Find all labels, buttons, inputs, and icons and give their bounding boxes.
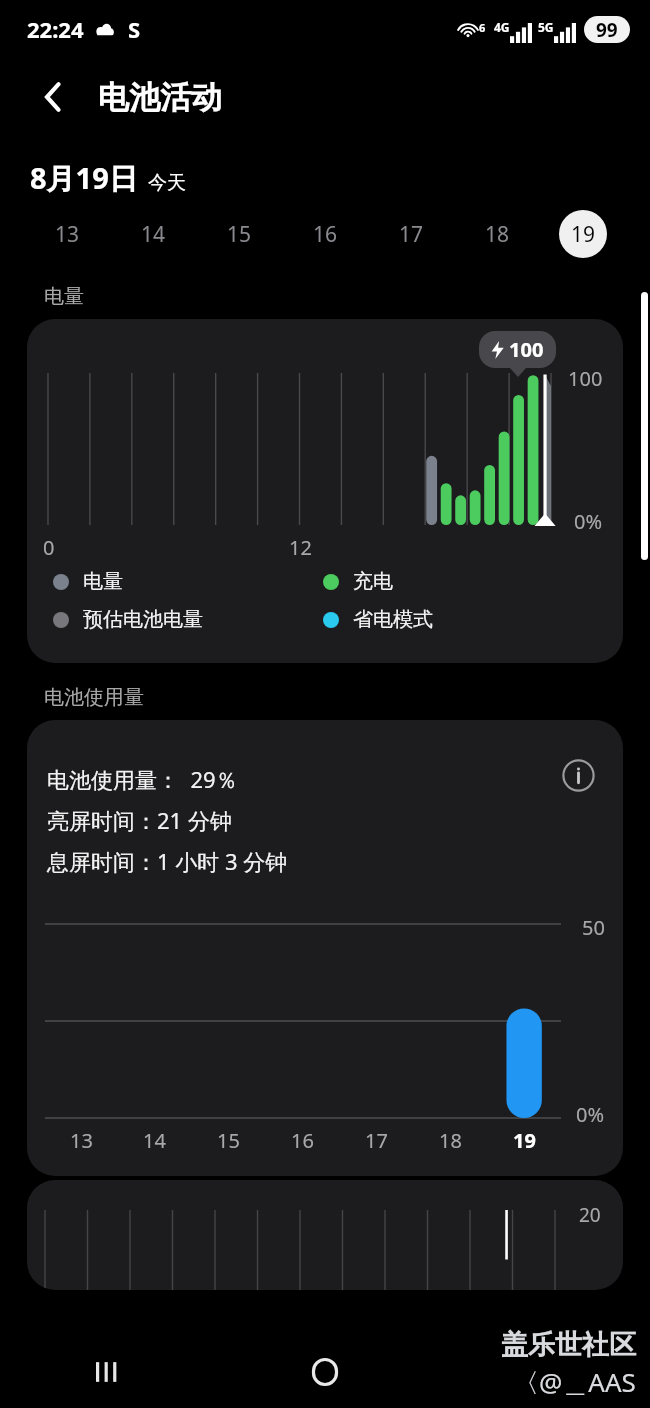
- staticText: 电量: [83, 569, 123, 594]
- staticText: 〈@＿AAS: [513, 1364, 636, 1400]
- staticText: 6: [479, 20, 486, 35]
- staticText: 19: [513, 1127, 536, 1154]
- staticText: 0: [43, 534, 55, 561]
- staticText: 电池使用量： 29％: [47, 764, 238, 794]
- button[interactable]: 15: [196, 198, 282, 270]
- staticText: 19: [571, 220, 596, 249]
- button[interactable]: 电池使用量： 29％: [27, 720, 623, 1176]
- staticText: 13: [70, 1127, 93, 1154]
- button[interactable]: 16: [282, 198, 368, 270]
- staticText: 18: [439, 1127, 462, 1154]
- staticText: 4G: [494, 19, 510, 35]
- button[interactable]: Back: [433, 1336, 650, 1408]
- staticText: 盖乐世社区: [501, 1328, 636, 1362]
- staticText: 预估电池电量: [83, 607, 203, 632]
- staticText: 16: [313, 220, 338, 249]
- staticText: 16: [291, 1127, 314, 1154]
- staticText: 99: [596, 17, 618, 43]
- button[interactable]: Recent apps: [0, 1336, 216, 1408]
- staticText: 14: [143, 1127, 166, 1154]
- button[interactable]: 17: [368, 198, 454, 270]
- staticText: 13: [55, 220, 80, 249]
- staticText: 100: [509, 336, 544, 363]
- staticText: 20: [579, 1202, 601, 1228]
- button[interactable]: Information: [557, 754, 599, 796]
- staticText: 0%: [576, 1101, 605, 1128]
- staticText: 充电: [353, 569, 393, 594]
- staticText: 17: [365, 1127, 388, 1154]
- staticText: 省电模式: [353, 607, 433, 632]
- button[interactable]: 18: [454, 198, 540, 270]
- button[interactable]: Back: [30, 74, 76, 120]
- staticText: 15: [217, 1127, 240, 1154]
- staticText: S: [128, 14, 141, 44]
- staticText: 息屏时间：1 小时 3 分钟: [47, 846, 288, 876]
- staticText: 电池活动: [98, 78, 222, 117]
- staticText: 17: [399, 220, 424, 249]
- staticText: 14: [141, 220, 166, 249]
- button[interactable]: Home: [216, 1336, 433, 1408]
- button[interactable]: 13: [24, 198, 110, 270]
- staticText: 12: [289, 534, 312, 561]
- staticText: 15: [227, 220, 252, 249]
- staticText: 100: [568, 365, 603, 392]
- button[interactable]: 20: [27, 1180, 623, 1290]
- staticText: 亮屏时间：21 分钟: [47, 805, 232, 835]
- button[interactable]: 14: [110, 198, 196, 270]
- staticText: 5G: [538, 19, 554, 35]
- staticText: 0%: [574, 508, 603, 535]
- staticText: 50: [582, 914, 605, 941]
- staticText: 8月19日: [30, 158, 138, 198]
- button[interactable]: 19: [540, 198, 626, 270]
- staticText: 22:24: [27, 14, 84, 44]
- staticText: 今天: [148, 171, 186, 195]
- staticText: 18: [485, 220, 510, 249]
- button[interactable]: 100: [27, 319, 623, 663]
- staticText: 电量: [44, 284, 84, 309]
- staticText: 电池使用量: [44, 685, 144, 710]
